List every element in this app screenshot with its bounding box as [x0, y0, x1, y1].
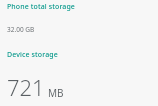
staticText: MB: [48, 86, 64, 100]
button[interactable]: 721: [7, 72, 151, 106]
button[interactable]: Phone total storage: [7, 2, 151, 12]
button[interactable]: Device storage: [7, 50, 151, 60]
staticText: Phone total storage: [7, 2, 75, 12]
staticText: Device storage: [7, 50, 58, 60]
button[interactable]: 32.00 GB: [7, 25, 151, 34]
staticText: 721: [7, 72, 45, 102]
staticText: 32.00 GB: [7, 25, 35, 34]
